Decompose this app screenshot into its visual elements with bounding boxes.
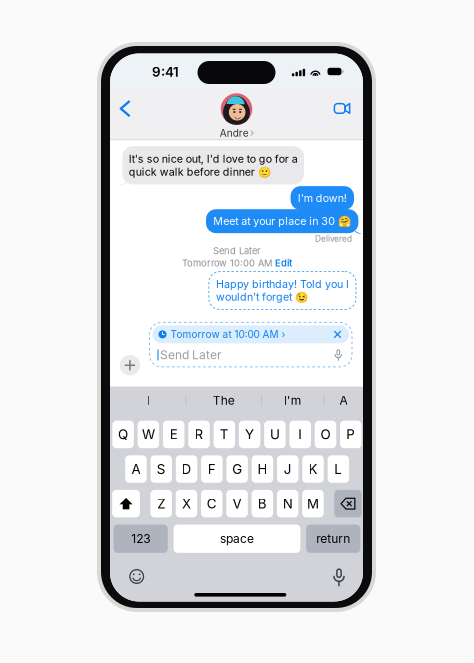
staticText: H bbox=[257, 461, 267, 477]
staticText: Q bbox=[118, 426, 128, 442]
staticText: O bbox=[320, 426, 330, 442]
button[interactable]: H bbox=[252, 455, 273, 483]
button[interactable]: G bbox=[226, 455, 248, 483]
button[interactable]: K bbox=[302, 455, 324, 483]
staticText: I'm bbox=[284, 393, 302, 408]
staticText: A bbox=[339, 393, 347, 408]
button[interactable]: B bbox=[252, 490, 273, 517]
staticText: F bbox=[208, 461, 216, 477]
staticText: return bbox=[316, 531, 350, 546]
staticText: M bbox=[307, 496, 319, 512]
staticText: I bbox=[147, 393, 150, 408]
button[interactable]: Dictate bbox=[333, 349, 344, 360]
staticText: 9:41 bbox=[152, 64, 179, 80]
button[interactable]: Andre bbox=[220, 93, 253, 139]
button[interactable]: Back bbox=[114, 95, 136, 123]
button[interactable]: Q bbox=[112, 421, 134, 448]
button[interactable]: M bbox=[302, 490, 324, 517]
staticText: Meet at your place in 30 🤗 bbox=[213, 215, 351, 228]
button[interactable]: Formatting bbox=[324, 386, 362, 414]
button[interactable]: Edit bbox=[275, 257, 292, 269]
button[interactable]: P bbox=[340, 421, 362, 448]
button[interactable]: T bbox=[214, 421, 235, 448]
staticText: Happy birthday! Told you I wouldn't forg… bbox=[216, 278, 349, 303]
button[interactable]: C bbox=[201, 490, 222, 517]
staticText: S bbox=[157, 461, 166, 477]
staticText: U bbox=[270, 426, 280, 442]
button[interactable]: Remove schedule bbox=[332, 329, 343, 340]
button[interactable]: The bbox=[186, 386, 261, 414]
staticText: Send Later bbox=[160, 348, 222, 362]
button[interactable]: N bbox=[277, 490, 298, 517]
staticText: P bbox=[346, 426, 355, 442]
button[interactable]: Z bbox=[150, 490, 172, 517]
button[interactable]: X bbox=[176, 490, 197, 517]
staticText: K bbox=[309, 461, 318, 477]
staticText: W bbox=[142, 426, 155, 442]
button[interactable]: L bbox=[328, 455, 349, 483]
staticText: Edit bbox=[275, 257, 292, 269]
button[interactable]: W bbox=[138, 421, 159, 448]
button[interactable]: Shift bbox=[112, 490, 140, 517]
staticText: I'm down! bbox=[298, 192, 347, 204]
button[interactable]: D bbox=[176, 455, 197, 483]
button[interactable]: I bbox=[289, 421, 311, 448]
button[interactable]: F bbox=[201, 455, 223, 483]
button[interactable]: A bbox=[125, 455, 147, 483]
staticText: Tomorrow at 10:00 AM › bbox=[170, 328, 285, 340]
staticText: E bbox=[170, 426, 178, 442]
staticText: Tomorrow 10:00 AM bbox=[182, 257, 272, 269]
staticText: C bbox=[207, 496, 217, 512]
staticText: Y bbox=[245, 426, 254, 442]
button[interactable]: 123 bbox=[113, 524, 168, 553]
button[interactable]: Dictation bbox=[326, 564, 352, 590]
staticText: N bbox=[283, 496, 293, 512]
staticText: R bbox=[194, 426, 203, 442]
button[interactable]: return bbox=[306, 524, 360, 553]
staticText: Andre bbox=[220, 127, 249, 139]
staticText: The bbox=[213, 393, 235, 408]
button[interactable]: Add attachment bbox=[120, 355, 140, 375]
button[interactable]: J bbox=[277, 455, 298, 483]
staticText: G bbox=[232, 461, 242, 477]
button[interactable]: O bbox=[315, 421, 336, 448]
button[interactable]: I bbox=[111, 386, 186, 414]
button[interactable]: Emoji bbox=[125, 565, 148, 588]
staticText: T bbox=[220, 426, 229, 442]
staticText: X bbox=[182, 496, 191, 512]
staticText: B bbox=[258, 496, 267, 512]
staticText: 123 bbox=[131, 531, 150, 546]
staticText: A bbox=[131, 461, 140, 477]
staticText: J bbox=[284, 461, 292, 477]
button[interactable]: space bbox=[174, 524, 300, 553]
button[interactable]: Delete bbox=[334, 490, 362, 517]
button[interactable]: Y bbox=[239, 421, 260, 448]
button[interactable]: I'm bbox=[262, 386, 324, 414]
button[interactable]: S bbox=[150, 455, 172, 483]
button[interactable]: FaceTime bbox=[325, 97, 354, 120]
staticText: Delivered bbox=[315, 234, 352, 244]
staticText: I bbox=[298, 426, 302, 442]
staticText: D bbox=[182, 461, 192, 477]
staticText: L bbox=[334, 461, 342, 477]
staticText: It's so nice out, I'd love to go for a q… bbox=[129, 152, 298, 178]
button[interactable]: U bbox=[264, 421, 286, 448]
staticText: Z bbox=[157, 496, 165, 512]
staticText: space bbox=[220, 531, 254, 546]
button[interactable]: V bbox=[226, 490, 248, 517]
staticText: Send Later bbox=[213, 245, 261, 257]
button[interactable]: E bbox=[163, 421, 184, 448]
button[interactable]: R bbox=[188, 421, 210, 448]
staticText: V bbox=[233, 496, 242, 512]
